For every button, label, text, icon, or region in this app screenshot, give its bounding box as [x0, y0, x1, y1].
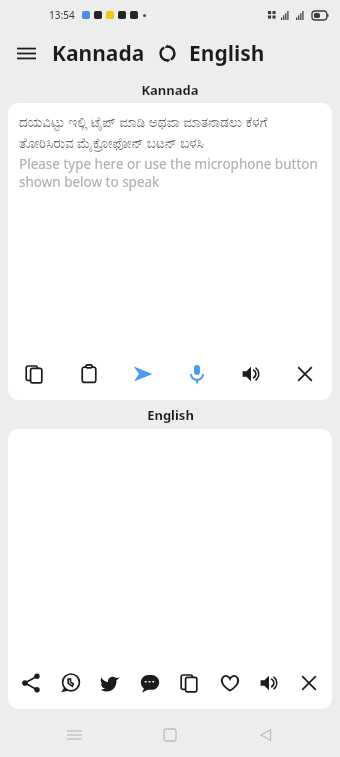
- button[interactable]: Microphone: [180, 357, 214, 391]
- staticText: 13:54: [49, 8, 75, 22]
- staticText: Please type here or use the microphone b…: [19, 155, 321, 191]
- button[interactable]: Share: [14, 666, 48, 700]
- button[interactable]: Copy: [173, 666, 207, 700]
- button[interactable]: SMS: [133, 666, 167, 700]
- button[interactable]: Menu: [6, 33, 46, 73]
- button[interactable]: Kannada: [52, 39, 145, 68]
- staticText: ದಯವಿಟ್ಟು ಇಲ್ಲಿ ಟೈಪ್ ಮಾಡಿ ಅಥವಾ ಮಾತನಾಡಲು ಕ…: [19, 113, 321, 152]
- button[interactable]: Home: [148, 715, 192, 755]
- staticText: English: [147, 406, 194, 424]
- staticText: Kannada: [141, 81, 199, 99]
- button[interactable]: Speak: [252, 666, 286, 700]
- button[interactable]: Twitter: [93, 666, 127, 700]
- button[interactable]: Clear: [288, 357, 322, 391]
- button[interactable]: Favourite: [213, 666, 247, 700]
- button[interactable]: Swap languages: [154, 40, 180, 66]
- button[interactable]: Send: [126, 357, 160, 391]
- button[interactable]: Speak: [234, 357, 268, 391]
- button[interactable]: Copy: [18, 357, 52, 391]
- button[interactable]: Clear: [292, 666, 326, 700]
- button[interactable]: WhatsApp: [54, 666, 88, 700]
- button[interactable]: Back: [244, 715, 288, 755]
- button[interactable]: Recents: [52, 715, 96, 755]
- staticText: Kannada: [52, 39, 145, 68]
- button[interactable]: English: [189, 39, 265, 68]
- button[interactable]: Paste: [72, 357, 106, 391]
- staticText: English: [189, 39, 265, 68]
